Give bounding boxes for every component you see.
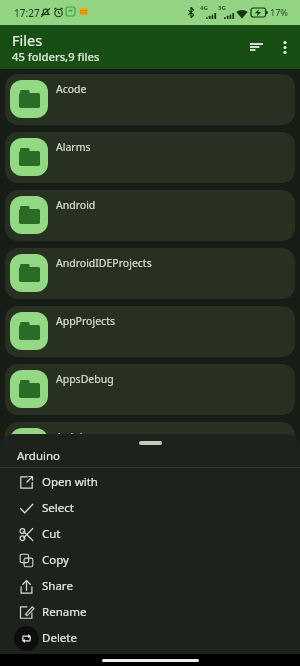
staticText: Alarms [56, 140, 91, 154]
button[interactable]: Sort [241, 32, 271, 62]
staticText: AppsDebug [56, 372, 114, 386]
staticText: Acode [56, 82, 87, 96]
button[interactable]: Select [0, 495, 300, 521]
button[interactable]: Delete [0, 625, 300, 651]
staticText: 17% [270, 6, 288, 18]
button[interactable]: AppsDebug [5, 364, 295, 415]
button[interactable]: Copy [0, 547, 300, 573]
staticText: Arduino [56, 430, 96, 444]
button[interactable]: AndroidIDEProjects [5, 248, 295, 299]
button[interactable]: Open with [0, 469, 300, 495]
button[interactable]: Acode [5, 74, 295, 125]
staticText: AppProjects [56, 314, 115, 328]
staticText: Open with [42, 474, 98, 490]
button[interactable]: Cut [0, 521, 300, 547]
button[interactable]: AppProjects [5, 306, 295, 357]
staticText: Copy [42, 552, 69, 568]
button[interactable]: Screen recorder [14, 626, 39, 651]
staticText: 3G [218, 4, 226, 12]
button[interactable]: More options [270, 32, 300, 62]
button[interactable]: Share [0, 573, 300, 599]
button[interactable]: Arduino [5, 422, 295, 473]
staticText: 17:27 [14, 6, 40, 20]
staticText: AndroidIDEProjects [56, 256, 152, 270]
staticText: 45 folders,9 files [12, 49, 100, 64]
staticText: Delete [42, 630, 77, 646]
staticText: Cut [42, 526, 61, 542]
button[interactable]: Rename [0, 599, 300, 625]
staticText: 4G [200, 4, 208, 12]
staticText: Select [42, 500, 74, 516]
staticText: Share [42, 578, 73, 594]
staticText: Arduino [17, 448, 61, 464]
staticText: Android [56, 198, 96, 212]
staticText: Rename [42, 604, 87, 620]
button[interactable]: Alarms [5, 132, 295, 183]
staticText: Files [12, 30, 43, 50]
button[interactable]: Android [5, 190, 295, 241]
